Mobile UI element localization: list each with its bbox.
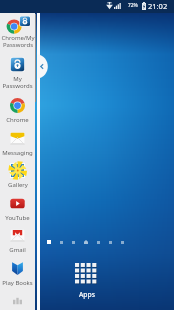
button[interactable]: Gallery [0,160,35,192]
button[interactable]: Messaging [0,128,35,160]
staticText: Messaging [2,149,33,157]
staticText: My Passwords [2,75,33,90]
button[interactable]: Play Books [0,258,35,290]
button[interactable] [0,290,35,310]
staticText: 72% [128,2,138,9]
staticText: Chrome [6,116,29,124]
button[interactable]: Gmail [0,225,35,257]
staticText: Apps [79,290,95,299]
button[interactable]: Chrome [0,95,35,127]
button[interactable]: Apps [73,261,100,301]
button[interactable]: My Passwords [0,54,35,94]
staticText: Gmail [9,246,26,254]
staticText: Play Books [2,279,33,287]
button[interactable]: Close panel [37,54,46,79]
button[interactable]: YouTube [0,193,35,225]
staticText: 21:02 [148,1,168,11]
staticText: Gallery [8,181,28,189]
button[interactable]: Chrome/My Passwords [0,13,35,53]
staticText: Chrome/My Passwords [1,34,35,49]
staticText: YouTube [5,214,30,222]
